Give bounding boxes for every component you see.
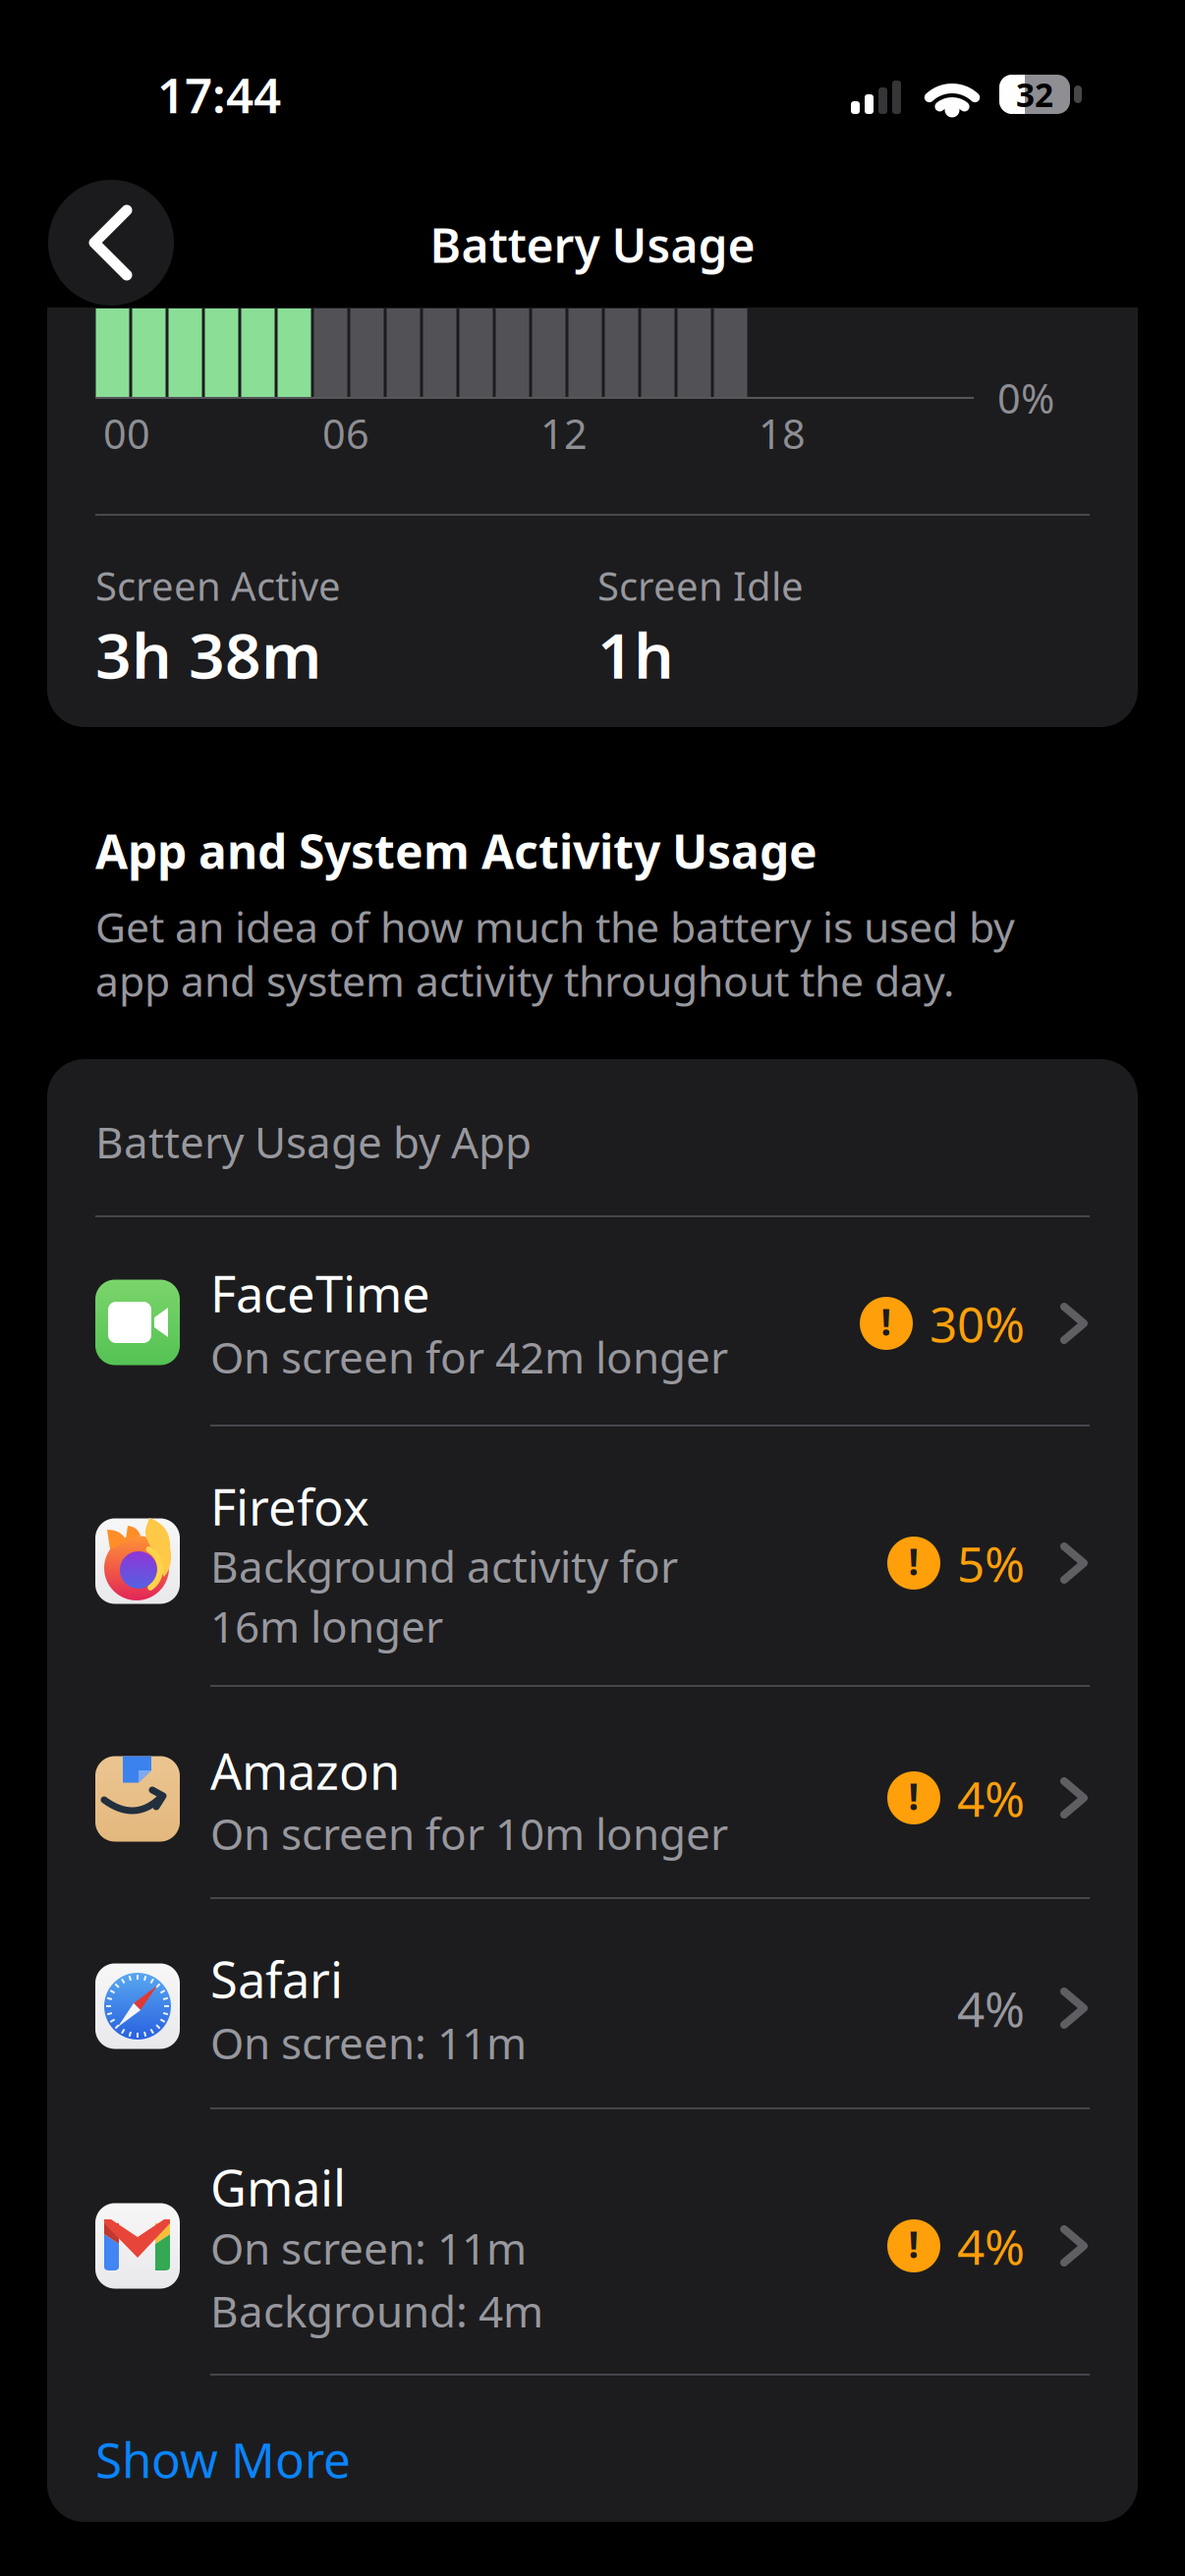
staticText: Show More (95, 2427, 351, 2491)
staticText: 4% (957, 2214, 1025, 2278)
staticText: ! (881, 1297, 892, 1346)
staticText: 00 (103, 406, 150, 460)
staticText: 06 (322, 406, 369, 460)
staticText: 17:44 (157, 62, 281, 126)
staticText: 1h (597, 613, 674, 696)
staticText: Safari (210, 1946, 343, 2012)
staticText: On screen for 10m longer (210, 1805, 728, 1862)
button[interactable]: Gmail (47, 2109, 1138, 2374)
staticText: On screen for 42m longer (210, 1328, 728, 1385)
staticText: 4% (957, 1766, 1025, 1830)
button[interactable]: Safari (47, 1899, 1138, 2107)
staticText: 5% (957, 1531, 1025, 1595)
button[interactable]: Firefox (47, 1427, 1138, 1685)
staticText: ! (908, 1772, 919, 1820)
staticText: 30% (930, 1291, 1025, 1355)
staticText: On screen: 11m (210, 2219, 527, 2277)
staticText: Amazon (210, 1737, 400, 1803)
staticText: Battery Usage by App (95, 1113, 532, 1170)
staticText: Battery Usage (430, 213, 755, 276)
staticText: App and System Activity Usage (95, 819, 818, 882)
staticText: 4% (957, 1976, 1025, 2040)
staticText: app and system activity throughout the d… (95, 953, 954, 1008)
staticText: Gmail (210, 2154, 346, 2220)
staticText: ! (908, 2220, 919, 2268)
staticText: Background: 4m (210, 2282, 543, 2339)
staticText: Background activity for (210, 1537, 678, 1595)
staticText: Screen Idle (597, 559, 804, 612)
staticText: 12 (540, 406, 588, 460)
button[interactable]: Show More (47, 2376, 1138, 2521)
staticText: 16m longer (210, 1597, 443, 1655)
staticText: FaceTime (210, 1260, 430, 1326)
staticText: 0% (997, 371, 1054, 425)
staticText: ! (908, 1537, 919, 1585)
staticText: Get an idea of how much the battery is u… (95, 899, 1015, 954)
button[interactable]: Back (48, 180, 174, 306)
button[interactable]: Amazon (47, 1687, 1138, 1897)
staticText: 32 (1016, 73, 1053, 116)
staticText: On screen: 11m (210, 2014, 527, 2071)
staticText: 18 (759, 406, 806, 460)
staticText: Screen Active (95, 559, 341, 612)
staticText: 3h 38m (95, 613, 321, 696)
button[interactable]: FaceTime (47, 1217, 1138, 1426)
staticText: Firefox (210, 1473, 369, 1539)
